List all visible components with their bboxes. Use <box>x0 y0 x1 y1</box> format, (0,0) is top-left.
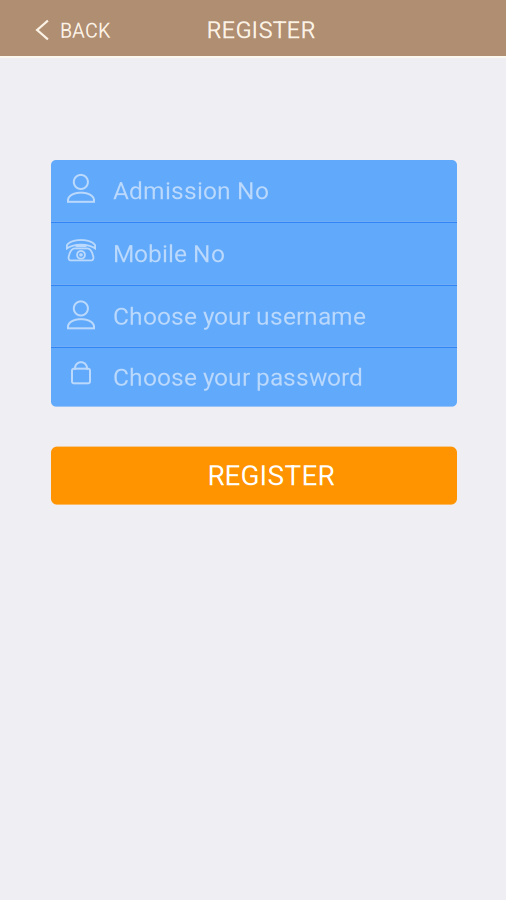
staticText: REGISTER <box>206 16 315 44</box>
staticText: BACK <box>60 19 110 42</box>
button[interactable]: REGISTER <box>50 447 456 505</box>
button[interactable]: Admission No <box>51 160 457 222</box>
staticText: Choose your password <box>113 363 363 392</box>
staticText: Choose your username <box>113 302 366 331</box>
button[interactable]: Choose your password <box>51 348 457 407</box>
staticText: Admission No <box>113 176 269 205</box>
staticText: REGISTER <box>207 459 334 492</box>
button[interactable]: Mobile No <box>51 223 457 285</box>
button[interactable]: BACK <box>0 7 128 48</box>
button[interactable]: Choose your username <box>51 286 457 347</box>
staticText: Mobile No <box>113 239 225 268</box>
